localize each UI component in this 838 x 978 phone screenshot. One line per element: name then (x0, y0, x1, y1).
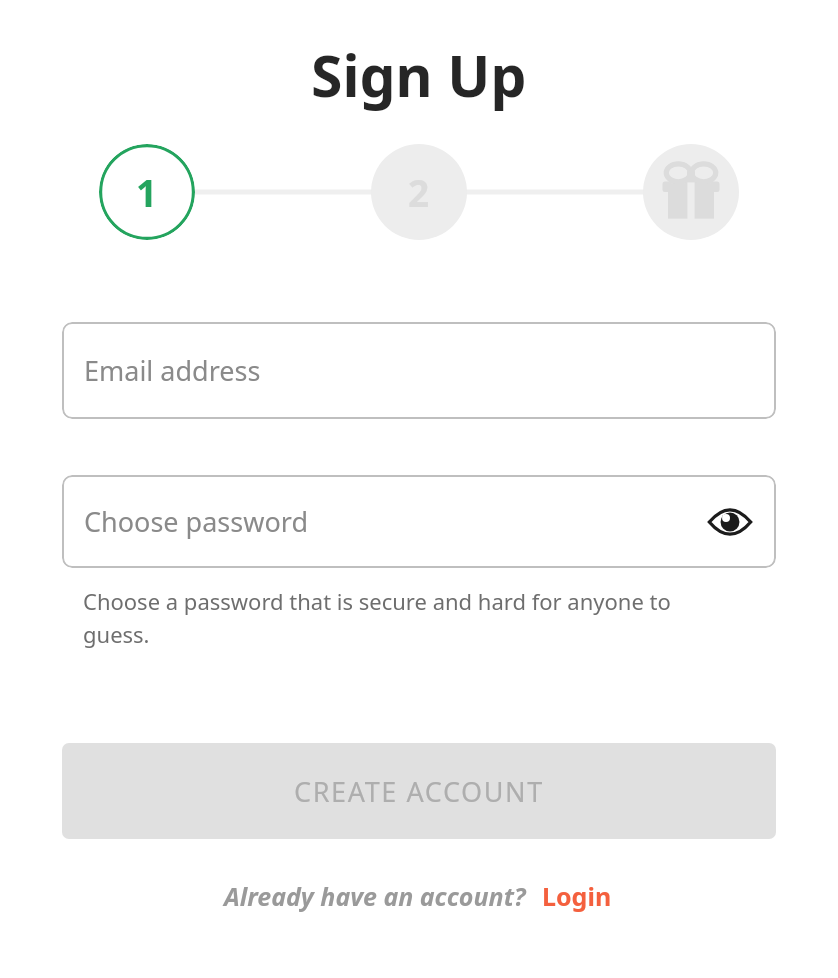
staticText: Choose password (84, 503, 308, 540)
staticText: 2 (408, 167, 430, 217)
button[interactable]: Reward step (643, 144, 739, 240)
button[interactable]: 1 (99, 144, 195, 240)
staticText: Sign Up (311, 36, 527, 114)
staticText: Login (542, 879, 612, 913)
staticText: Choose a password that is secure and har… (83, 586, 728, 649)
button[interactable]: Email address (62, 322, 776, 419)
staticText: Already have an account? (224, 879, 526, 913)
staticText: 1 (136, 167, 158, 217)
staticText: CREATE ACCOUNT (294, 773, 544, 810)
button[interactable]: 2 (371, 144, 467, 240)
button[interactable]: CREATE ACCOUNT (62, 743, 776, 839)
button[interactable]: Login (540, 877, 614, 915)
button[interactable]: Choose password (62, 475, 776, 568)
button[interactable]: Show password (704, 496, 756, 548)
staticText: Email address (84, 352, 261, 389)
